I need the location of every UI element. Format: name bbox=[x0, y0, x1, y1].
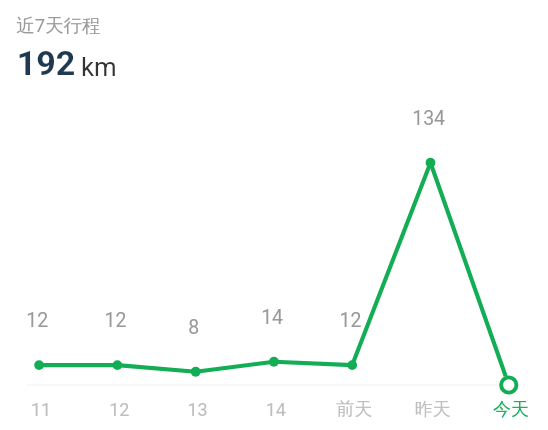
button[interactable]: 近7天行程 192 km bbox=[12, 10, 124, 82]
button[interactable]: 今天 0 km bbox=[470, 100, 548, 430]
button[interactable]: 12 12 km bbox=[78, 100, 156, 430]
button[interactable]: 14 14 km bbox=[235, 100, 313, 430]
button[interactable]: 13 8 km bbox=[157, 100, 235, 430]
button[interactable]: 昨天 134 km bbox=[392, 100, 470, 430]
button[interactable]: 前天 12 km bbox=[313, 100, 391, 430]
button[interactable]: 11 12 km bbox=[0, 100, 78, 430]
